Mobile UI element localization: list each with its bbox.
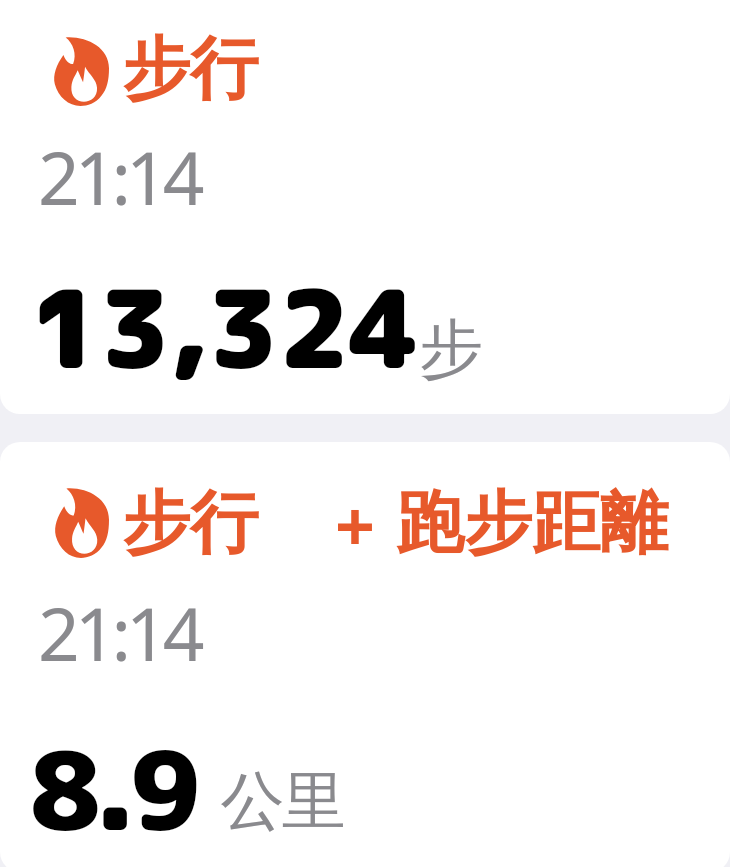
staticText: 21:14 bbox=[38, 127, 200, 226]
staticText: 跑步距離 bbox=[396, 481, 668, 567]
button[interactable] bbox=[0, 0, 730, 414]
staticText: 步 bbox=[419, 309, 483, 390]
button[interactable] bbox=[0, 442, 730, 867]
staticText: 13,324 bbox=[30, 253, 419, 402]
staticText: 公里 bbox=[222, 761, 344, 842]
staticText: 21:14 bbox=[38, 583, 200, 682]
staticText: 8.9 bbox=[30, 715, 195, 864]
staticText: 步行 bbox=[122, 27, 258, 113]
staticText: 步行 bbox=[122, 481, 258, 567]
staticText: + bbox=[335, 477, 376, 572]
